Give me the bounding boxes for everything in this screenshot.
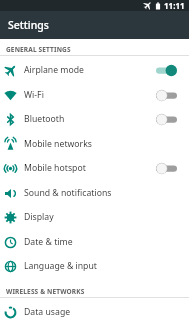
button[interactable] [156, 113, 177, 126]
button[interactable]: Language & input [0, 254, 189, 278]
staticText: Bluetooth [24, 113, 156, 125]
button[interactable]: Sound & notifications [0, 181, 189, 205]
staticText: Sound & notifications [24, 187, 177, 199]
staticText: Display [24, 211, 177, 223]
button[interactable]: Mobile networks [0, 132, 189, 156]
button[interactable]: Airplane mode [0, 58, 189, 82]
staticText: Wi-Fi [24, 89, 156, 101]
button[interactable]: Data usage [0, 300, 189, 324]
button[interactable] [156, 162, 177, 175]
button[interactable]: Bluetooth [0, 107, 189, 131]
staticText: GENERAL SETTINGS [6, 45, 71, 54]
button[interactable] [156, 89, 177, 102]
button[interactable] [156, 64, 177, 77]
button[interactable]: Mobile hotspot [0, 156, 189, 180]
staticText: Date & time [24, 236, 177, 248]
button[interactable]: Display [0, 205, 189, 229]
staticText: Mobile hotspot [24, 162, 156, 174]
staticText: Airplane mode [24, 64, 156, 76]
staticText: Mobile networks [24, 138, 177, 150]
staticText: Data usage [24, 306, 177, 318]
button[interactable]: Wi-Fi [0, 83, 189, 107]
staticText: 11:11 [164, 0, 185, 11]
staticText: WIRELESS & NETWORKS [6, 287, 85, 296]
staticText: Language & input [24, 260, 177, 272]
staticText: Settings [8, 18, 49, 32]
button[interactable]: Date & time [0, 230, 189, 254]
